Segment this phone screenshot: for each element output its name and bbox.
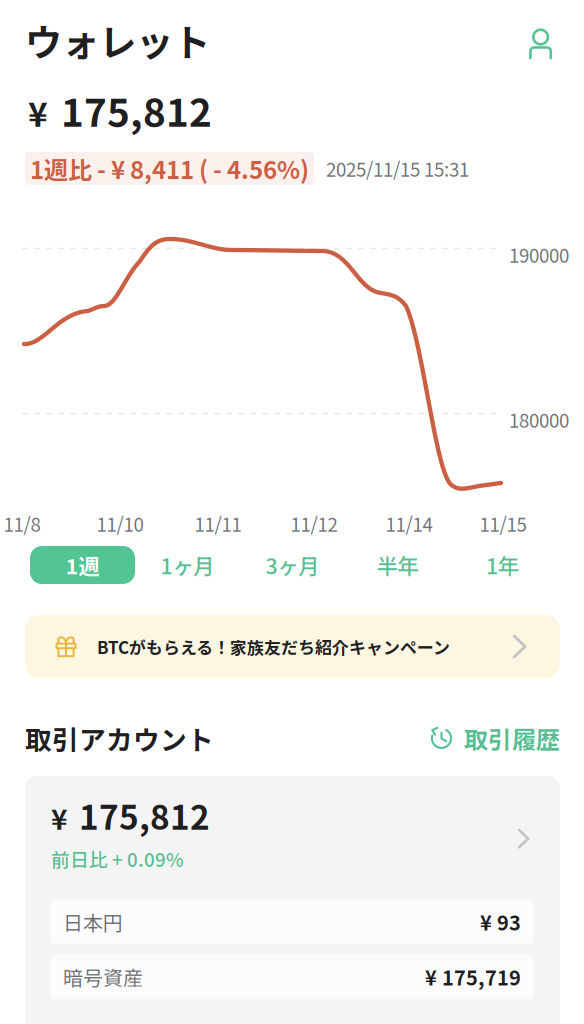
staticText: 11/10 [96,510,143,537]
button[interactable]: 1年 [450,546,555,584]
staticText: 11/11 [194,510,241,537]
button[interactable]: 1ヶ月 [135,546,240,584]
staticText: 取引履歴 [464,721,560,756]
staticText: 1週比 - ¥ 8,411 ( - 4.56%) [30,151,309,186]
staticText: 1年 [486,550,519,580]
staticText: 1ヶ月 [160,550,214,580]
staticText: 3ヶ月 [265,550,319,580]
staticText: 11/15 [479,510,526,537]
button[interactable]: 半年 [345,546,450,584]
button[interactable]: 日本円 [50,899,534,944]
staticText: 前日比 + 0.09% [51,845,184,872]
staticText: ¥ 175,719 [425,962,521,991]
staticText: ¥ [28,88,48,136]
staticText: 2025/11/15 15:31 [326,155,469,182]
staticText: ¥ [51,797,68,838]
staticText: 半年 [376,550,418,580]
staticText: 175,812 [79,791,210,839]
staticText: 暗号資産 [63,962,143,991]
staticText: BTCがもらえる！家族友だち紹介キャンペーン [97,634,450,659]
button[interactable]: ¥ [25,776,560,1024]
staticText: 日本円 [63,907,123,936]
staticText: 取引アカウント [25,719,214,758]
button[interactable]: 取引履歴 [429,721,560,756]
staticText: ウォレット [25,13,210,67]
button[interactable]: Account [519,18,563,62]
staticText: 11/14 [385,510,432,537]
staticText: 11/12 [290,510,337,537]
staticText: 190000 [509,241,569,268]
staticText: 1週 [65,550,99,580]
button[interactable]: BTCがもらえる！家族友だち紹介キャンペーン [25,615,560,678]
button[interactable]: 暗号資産 [50,954,534,999]
staticText: 175,812 [61,82,212,138]
button[interactable]: 1週 [30,546,135,584]
staticText: 180000 [509,406,569,433]
staticText: ¥ 93 [480,907,521,936]
button[interactable]: 3ヶ月 [240,546,345,584]
staticText: 11/8 [3,510,40,537]
